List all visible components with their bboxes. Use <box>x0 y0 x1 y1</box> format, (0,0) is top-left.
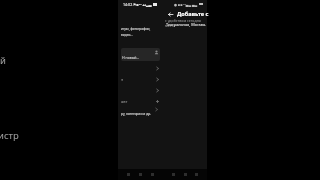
button[interactable] <box>121 85 160 96</box>
staticText: й <box>0 54 6 67</box>
staticText: Театральная, Москва. <box>166 22 207 27</box>
staticText: Н новый… <box>122 55 140 60</box>
staticText: ру, категории и др. <box>121 111 152 115</box>
button[interactable]: э <box>121 74 160 85</box>
staticText: э <box>121 77 123 82</box>
button[interactable] <box>121 63 160 74</box>
button[interactable]: авт <box>121 96 160 107</box>
staticText: с удобством сегодня места <box>165 18 209 28</box>
staticText: Добавьте с <box>177 10 209 18</box>
staticText: игры, фотографии, видео… <box>121 27 151 37</box>
staticText: 14:02 ⚑▪•• ▴▴▂▃ <box>123 2 152 7</box>
button[interactable]: Н новый… <box>121 48 160 61</box>
staticText: истр <box>0 129 19 142</box>
staticText: ● ▪▪ ••▄▃ ▄▃ <box>174 2 198 7</box>
button[interactable]: Back <box>165 9 175 19</box>
staticText: авт <box>121 99 128 104</box>
